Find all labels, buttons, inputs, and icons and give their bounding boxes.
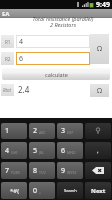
staticText: TUV [39, 170, 46, 175]
button[interactable]: 6 [57, 142, 83, 159]
staticText: 5 [33, 146, 38, 156]
staticText: 0 [33, 186, 38, 196]
staticText: 6 [61, 146, 66, 156]
staticText: GHI [11, 150, 18, 155]
staticText: 6 [19, 54, 24, 64]
staticText: , [97, 147, 99, 155]
button[interactable]: 4 [1, 142, 27, 159]
staticText: EA [2, 10, 10, 18]
button[interactable]: 7 [1, 162, 27, 179]
staticText: 2.4 [18, 84, 30, 95]
staticText: Next [91, 187, 106, 195]
staticText: 4 [5, 146, 10, 156]
staticText: R2 [5, 56, 11, 62]
button[interactable]: 2 [29, 123, 55, 139]
staticText: 9:49 [96, 0, 110, 9]
staticText: 8 [33, 166, 38, 176]
button[interactable]: Search [57, 182, 83, 199]
staticText: 1 [5, 126, 10, 136]
staticText: PQRS [11, 170, 20, 175]
staticText: 2 Resistors [14, 21, 112, 28]
staticText: Rtot [3, 87, 12, 93]
staticText: MNO [67, 150, 76, 155]
button[interactable]: 0 [29, 182, 55, 199]
staticText: JKL [39, 150, 44, 155]
staticText: R1 [5, 39, 11, 45]
button[interactable]: , [85, 142, 111, 159]
staticText: Ω [97, 44, 103, 54]
button[interactable]: Symbols [85, 123, 111, 139]
staticText: WXYZ [67, 170, 77, 175]
staticText: 3 [61, 126, 66, 136]
button[interactable]: 3 [57, 123, 83, 139]
staticText: DEF [67, 130, 74, 135]
button[interactable]: Unit ohm [90, 84, 109, 97]
staticText: Search [64, 188, 77, 193]
button[interactable]: 8 [29, 162, 55, 179]
button[interactable]: Delete [85, 162, 111, 179]
button[interactable]: calculate [2, 68, 110, 80]
button[interactable]: 5 [29, 142, 55, 159]
button[interactable]: Unit ohm [90, 34, 109, 64]
button[interactable]: Next [85, 182, 111, 199]
staticText: ABC [39, 130, 46, 135]
staticText: 9 [61, 166, 66, 176]
staticText: Ω [97, 86, 103, 96]
staticText: 2 [33, 126, 38, 136]
staticText: 7 [5, 166, 10, 176]
button[interactable]: 6 [16, 52, 90, 65]
button[interactable]: 9 [57, 162, 83, 179]
staticText: *#( [10, 187, 19, 195]
staticText: + [39, 190, 42, 195]
button[interactable]: 1 [1, 123, 27, 139]
staticText: 4 [19, 37, 24, 47]
button[interactable]: 4 [16, 35, 90, 48]
staticText: Total resistance (parallel) [14, 15, 112, 22]
button[interactable]: *#( [1, 182, 27, 199]
staticText: calculate [45, 71, 68, 78]
